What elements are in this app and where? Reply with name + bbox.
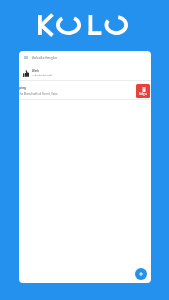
button[interactable]: მისამართები	[19, 51, 151, 64]
staticText: 14 ჭავჭავაძის გამზ.	[32, 74, 53, 77]
staticText: 9 Kiacha Manuhadhuli Street, Vake	[19, 92, 58, 96]
button[interactable]: Add	[135, 268, 147, 280]
staticText: Shopping	[19, 86, 27, 90]
button[interactable]: Work	[19, 65, 151, 81]
staticText: მისამართები	[32, 55, 57, 60]
staticText: Work	[32, 69, 39, 73]
button[interactable]: Delete	[136, 84, 150, 98]
staticText: წაშლა	[139, 93, 148, 96]
